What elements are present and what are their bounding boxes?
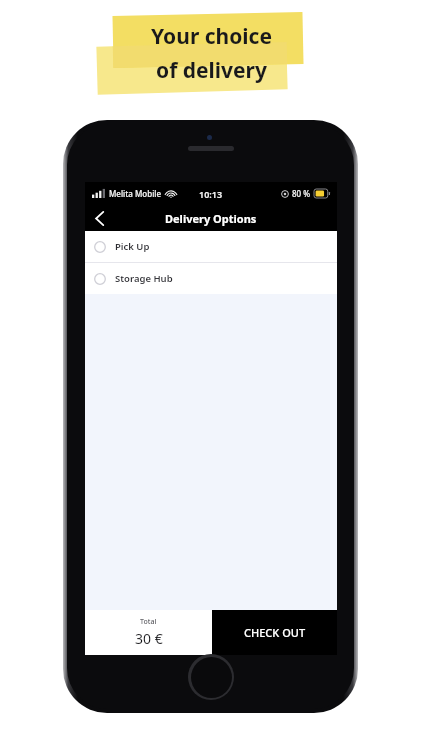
button[interactable]: CHECK OUT <box>212 610 337 655</box>
button[interactable]: Pick Up <box>85 231 337 262</box>
staticText: Storage Hub <box>115 272 173 285</box>
staticText: 80 % <box>292 188 311 199</box>
staticText: 10:13 <box>199 188 223 200</box>
button[interactable]: Total <box>85 610 212 655</box>
staticText: Delivery Options <box>165 211 257 226</box>
button[interactable]: Storage Hub <box>85 263 337 294</box>
staticText: CHECK OUT <box>244 625 306 640</box>
staticText: Melita Mobile <box>109 188 162 199</box>
staticText: 30 € <box>135 629 163 648</box>
button[interactable]: Back <box>85 205 113 231</box>
staticText: Pick Up <box>115 240 150 253</box>
staticText: Your choice <box>151 22 272 51</box>
staticText: Total <box>140 617 157 627</box>
staticText: of delivery <box>156 56 267 85</box>
